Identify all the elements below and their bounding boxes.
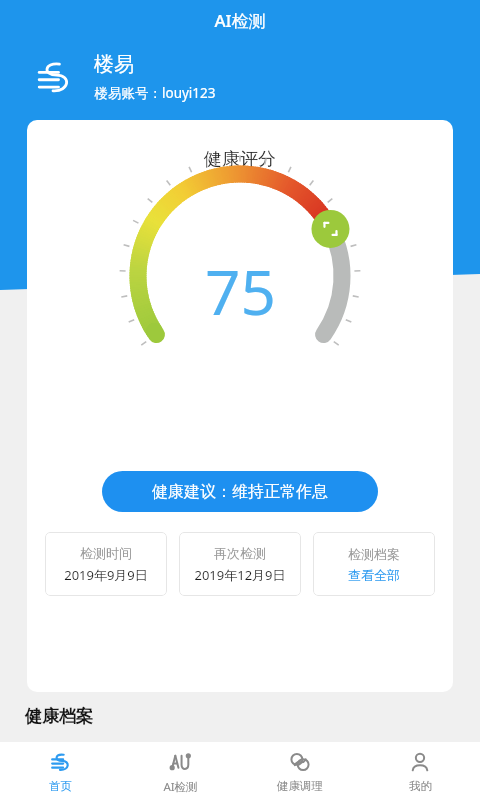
other: 我的 (407, 749, 433, 775)
button[interactable]: 检测档案 (313, 532, 435, 596)
staticText: AI检测 (163, 779, 198, 795)
staticText: 健康档案 (25, 706, 93, 727)
button[interactable]: 健康建议：维持正常作息 (102, 471, 378, 512)
staticText: 再次检测 (214, 545, 266, 561)
other: 首页 (47, 749, 73, 775)
staticText: 检测档案 (348, 546, 400, 562)
staticText: 楼易 (94, 52, 134, 77)
button[interactable]: AI检测 (120, 742, 240, 800)
staticText: AI检测 (214, 9, 266, 32)
staticText: 2019年9月9日 (64, 566, 148, 584)
staticText: 查看全部 (348, 567, 400, 583)
staticText: 2019年12月9日 (194, 566, 286, 584)
button[interactable]: 检测时间 (45, 532, 167, 596)
button[interactable]: 我的 (360, 742, 480, 800)
button[interactable]: 健康调理 (240, 742, 360, 800)
staticText: 健康调理 (277, 779, 323, 793)
staticText: 75 (205, 249, 276, 333)
staticText: 健康评分 (204, 148, 276, 171)
staticText: 我的 (409, 779, 432, 793)
staticText: 楼易账号：louyi123 (94, 84, 216, 102)
other: AI检测 (167, 749, 193, 775)
staticText: 检测时间 (80, 545, 132, 561)
button[interactable]: 首页 (0, 742, 120, 800)
button[interactable]: 再次检测 (179, 532, 301, 596)
other: 健康调理 (287, 749, 313, 775)
staticText: 首页 (49, 779, 72, 793)
staticText: 健康建议：维持正常作息 (152, 482, 328, 502)
